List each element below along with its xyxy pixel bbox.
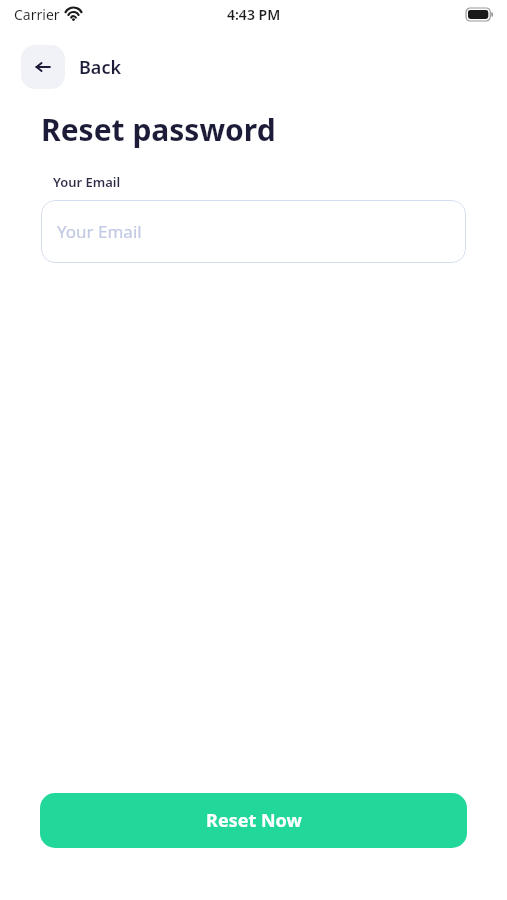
- button[interactable]: Your Email: [41, 200, 466, 263]
- staticText: Your Email: [53, 173, 121, 191]
- staticText: Reset Now: [206, 808, 302, 833]
- button[interactable]: Reset Now: [40, 793, 467, 848]
- staticText: 4:43 PM: [227, 5, 281, 24]
- staticText: Your Email: [57, 220, 142, 243]
- staticText: Back: [79, 55, 122, 80]
- button[interactable]: Back: [21, 45, 65, 89]
- staticText: Carrier: [14, 5, 60, 24]
- staticText: Reset password: [41, 109, 276, 150]
- button[interactable]: Back: [79, 55, 122, 80]
